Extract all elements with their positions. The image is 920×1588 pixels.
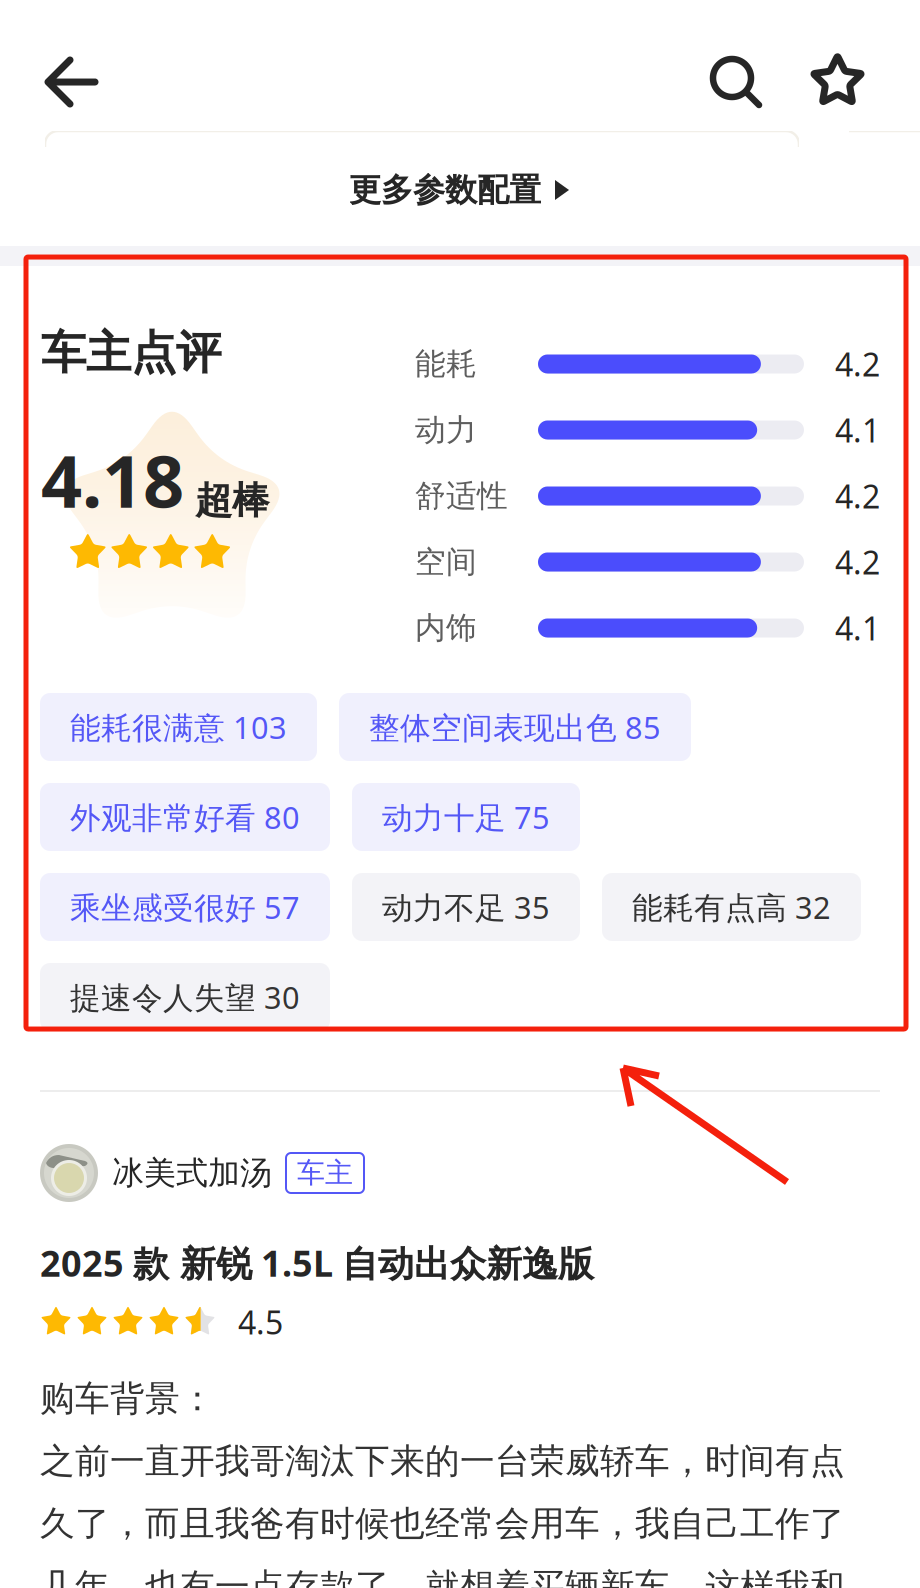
staticText: 超棒: [195, 478, 269, 524]
staticText: 4.2: [835, 541, 880, 583]
staticText: 外观非常好看 80: [70, 797, 300, 837]
button[interactable]: 动力不足 35: [352, 873, 580, 941]
staticText: 购车背景：: [40, 1377, 215, 1420]
staticText: 整体空间表现出色 85: [369, 707, 661, 747]
button[interactable]: 能耗有点高 32: [602, 873, 861, 941]
staticText: 能耗: [415, 345, 477, 383]
button[interactable]: 提速令人失望 30: [40, 963, 330, 1031]
button[interactable]: Favorite: [790, 35, 884, 129]
staticText: 动力: [415, 411, 477, 449]
button[interactable]: 整体空间表现出色 85: [339, 693, 691, 761]
staticText: 内饰: [415, 609, 477, 647]
button[interactable]: 更多参数配置: [0, 160, 920, 220]
button[interactable]: Search: [688, 35, 782, 129]
button[interactable]: 能耗很满意 103: [40, 693, 317, 761]
staticText: 舒适性: [415, 477, 508, 515]
button[interactable]: 外观非常好看 80: [40, 783, 330, 851]
staticText: 冰美式加汤: [112, 1153, 272, 1193]
staticText: 4.1: [835, 409, 880, 451]
button[interactable]: 动力十足 75: [352, 783, 580, 851]
staticText: 4.1: [835, 607, 880, 649]
staticText: 更多参数配置: [349, 170, 541, 210]
staticText: 乘坐感受很好 57: [70, 887, 300, 927]
staticText: 动力不足 35: [382, 887, 550, 927]
staticText: 2025 款 新锐 1.5L 自动出众新逸版: [40, 1239, 594, 1287]
staticText: 4.2: [835, 475, 880, 517]
staticText: 4.2: [835, 343, 880, 385]
button[interactable]: 乘坐感受很好 57: [40, 873, 330, 941]
staticText: 空间: [415, 543, 477, 581]
staticText: 4.18: [41, 432, 184, 528]
staticText: 能耗很满意 103: [70, 707, 287, 747]
staticText: 车主: [297, 1156, 353, 1190]
staticText: 能耗有点高 32: [632, 887, 831, 927]
staticText: 车主点评: [41, 325, 221, 381]
button[interactable]: Back: [24, 35, 118, 129]
staticText: 之前一直开我哥淘汰下来的一台荣威轿车，时间有点久了，而且我爸有时候也经常会用车，…: [40, 1440, 845, 1588]
staticText: 4.5: [238, 1301, 283, 1343]
staticText: 提速令人失望 30: [70, 977, 300, 1017]
staticText: 动力十足 75: [382, 797, 550, 837]
